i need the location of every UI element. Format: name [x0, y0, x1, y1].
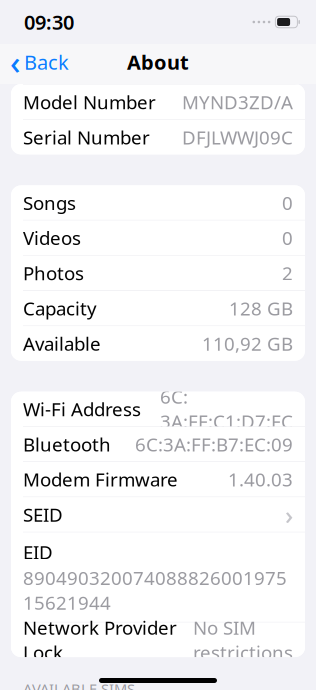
- staticText: 2: [282, 261, 293, 285]
- button[interactable]: ‹: [0, 44, 79, 80]
- staticText: ›: [285, 498, 293, 531]
- staticText: EID: [23, 539, 53, 564]
- staticText: 0: [282, 225, 293, 250]
- staticText: 09:30: [24, 9, 74, 35]
- staticText: MYND3ZD/A: [182, 90, 293, 114]
- button[interactable]: Modem Firmware: [11, 462, 305, 497]
- button[interactable]: Available: [11, 326, 305, 361]
- button[interactable]: Network Provider Lock: [11, 623, 305, 657]
- staticText: DFJLWWJ09C: [182, 125, 293, 150]
- staticText: 1.40.03: [228, 467, 293, 492]
- staticText: Wi-Fi Address: [23, 397, 141, 421]
- button[interactable]: Photos: [11, 256, 305, 290]
- button[interactable]: Serial Number: [11, 120, 305, 154]
- staticText: 6C:3A:FF:B7:EC:09: [135, 432, 293, 457]
- staticText: 0: [282, 190, 293, 215]
- button[interactable]: Songs: [11, 185, 305, 220]
- staticText: Back: [24, 49, 69, 75]
- staticText: 6C:3A:FF:C1:D7:FC: [160, 384, 293, 434]
- staticText: Capacity: [23, 296, 97, 321]
- staticText: About: [127, 49, 189, 75]
- button[interactable]: Videos: [11, 221, 305, 255]
- staticText: 128 GB: [229, 296, 293, 321]
- button[interactable]: Bluetooth: [11, 427, 305, 461]
- button[interactable]: Wi-Fi Address: [11, 392, 305, 426]
- staticText: Available: [23, 331, 101, 356]
- button[interactable]: Capacity: [11, 291, 305, 325]
- button[interactable]: EID: [11, 532, 305, 622]
- staticText: AVAILABLE SIMS: [23, 679, 135, 690]
- staticText: Model Number: [23, 90, 156, 114]
- staticText: ‹: [10, 41, 20, 83]
- staticText: Videos: [23, 225, 81, 250]
- staticText: 89049032007408882600197515621944: [23, 565, 287, 615]
- staticText: Songs: [23, 190, 76, 215]
- staticText: Network Provider Lock: [23, 615, 177, 665]
- button[interactable]: SEID: [11, 497, 305, 532]
- staticText: Photos: [23, 261, 84, 285]
- staticText: Bluetooth: [23, 432, 111, 457]
- staticText: No SIM restrictions: [193, 615, 293, 665]
- staticText: 110,92 GB: [202, 331, 293, 356]
- button[interactable]: Model Number: [11, 85, 305, 119]
- staticText: Modem Firmware: [23, 467, 178, 492]
- staticText: Serial Number: [23, 125, 150, 150]
- staticText: SEID: [23, 502, 63, 527]
